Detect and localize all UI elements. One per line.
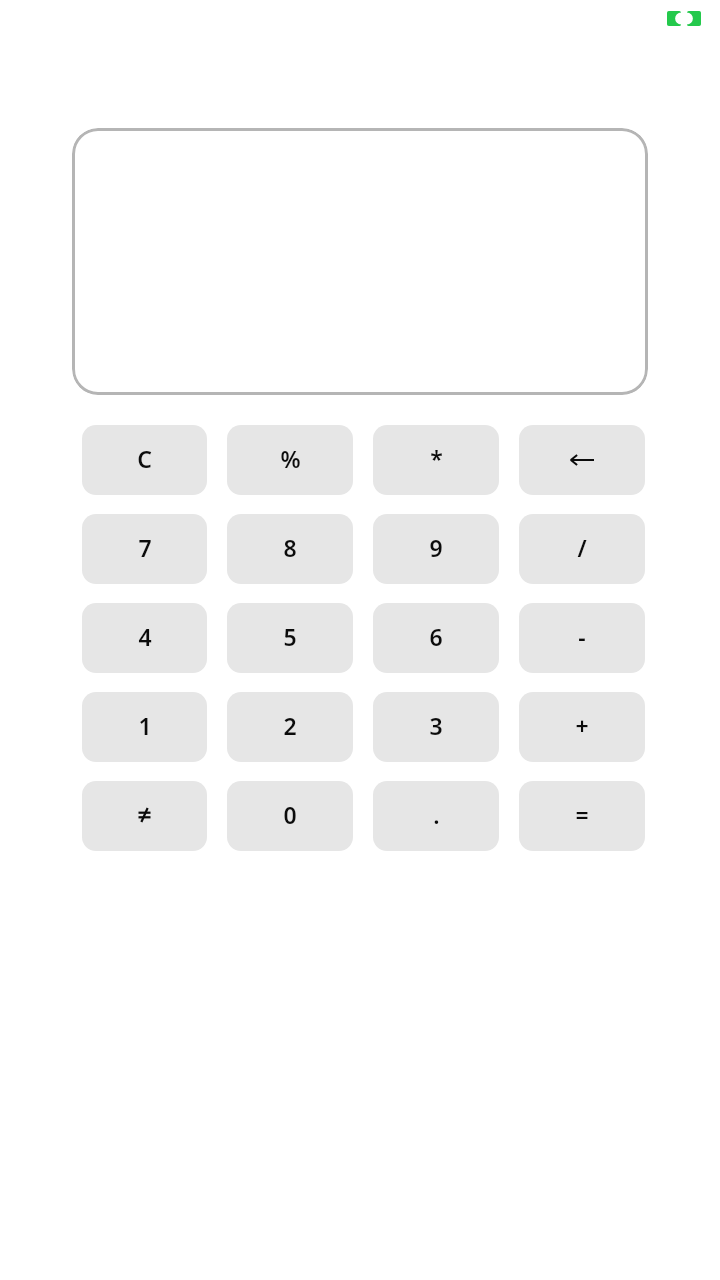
staticText: 1	[138, 710, 152, 741]
staticText: 3	[429, 710, 443, 741]
button[interactable]: Minus	[519, 603, 645, 673]
staticText: C	[137, 443, 152, 474]
button[interactable]: Zero	[227, 781, 353, 851]
staticText: /	[577, 532, 587, 563]
staticText: =	[575, 799, 589, 830]
button[interactable]: Seven	[82, 514, 207, 584]
button[interactable]: Not equal	[82, 781, 207, 851]
staticText: 2	[283, 710, 297, 741]
staticText: 4	[138, 621, 152, 652]
staticText: %	[280, 443, 301, 474]
button[interactable]: Decimal point	[373, 781, 499, 851]
button[interactable]: Multiply	[373, 425, 499, 495]
button[interactable]: Backspace	[519, 425, 645, 495]
staticText: 0	[283, 799, 297, 830]
button[interactable]: Divide	[519, 514, 645, 584]
button[interactable]: Four	[82, 603, 207, 673]
staticText: 6	[429, 621, 443, 652]
staticText: 9	[429, 532, 443, 563]
button[interactable]: Nine	[373, 514, 499, 584]
staticText: 7	[138, 532, 152, 563]
button[interactable]: Eight	[227, 514, 353, 584]
staticText: -	[578, 621, 586, 652]
staticText: .	[433, 799, 440, 830]
button[interactable]: Plus	[519, 692, 645, 762]
button[interactable]: One	[82, 692, 207, 762]
staticText: *	[430, 443, 443, 474]
button[interactable]: Six	[373, 603, 499, 673]
staticText: 5	[283, 621, 297, 652]
button[interactable]: Two	[227, 692, 353, 762]
button[interactable]: Three	[373, 692, 499, 762]
button[interactable]	[72, 128, 648, 395]
staticText: +	[575, 710, 589, 741]
button[interactable]: Code brackets	[667, 11, 701, 26]
staticText: 8	[283, 532, 297, 563]
button[interactable]: Equals	[519, 781, 645, 851]
button[interactable]: Five	[227, 603, 353, 673]
button[interactable]: Clear	[82, 425, 207, 495]
button[interactable]: Percent	[227, 425, 353, 495]
